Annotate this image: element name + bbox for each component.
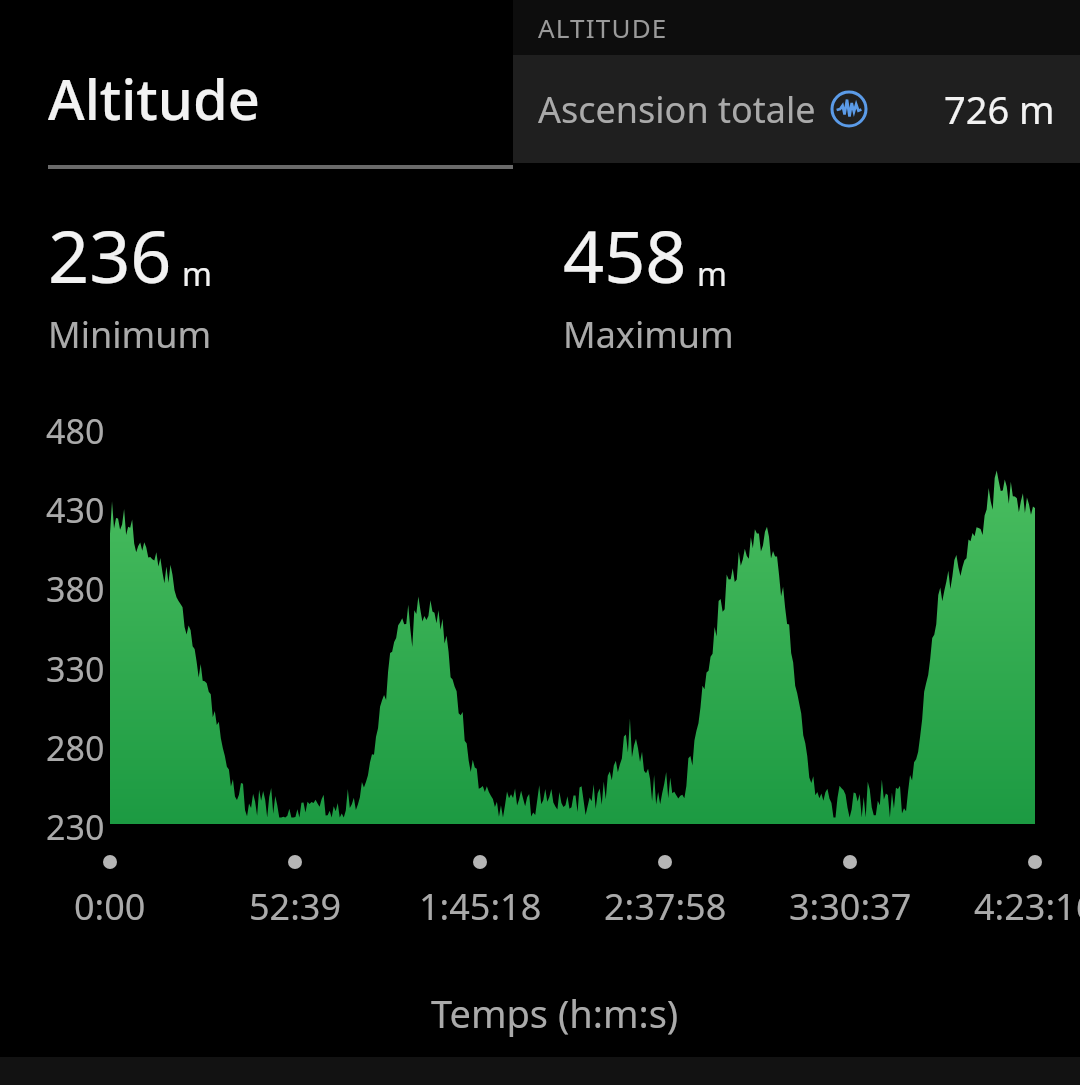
staticText: ALTITUDE bbox=[538, 10, 668, 45]
staticText: Ascension totale bbox=[538, 85, 816, 134]
staticText: 52:39 bbox=[249, 882, 342, 931]
staticText: Temps (h:m:s) bbox=[431, 987, 679, 1039]
staticText: 1:45:18 bbox=[419, 882, 542, 931]
staticText: 236 bbox=[48, 206, 172, 304]
staticText: 330 bbox=[46, 646, 105, 692]
staticText: Altitude bbox=[48, 60, 260, 136]
staticText: Maximum bbox=[563, 310, 734, 359]
staticText: 4:23:16 bbox=[974, 882, 1080, 931]
staticText: m bbox=[182, 252, 212, 296]
staticText: 2:37:58 bbox=[604, 882, 727, 931]
staticText: 0:00 bbox=[74, 882, 146, 931]
staticText: 280 bbox=[46, 725, 105, 771]
staticText: Minimum bbox=[48, 310, 212, 359]
staticText: 430 bbox=[46, 487, 105, 533]
staticText: 3:30:37 bbox=[789, 882, 912, 931]
staticText: 726 m bbox=[944, 83, 1055, 135]
staticText: 380 bbox=[46, 566, 105, 612]
button[interactable]: Ascension totale bbox=[513, 55, 1080, 163]
staticText: 458 bbox=[563, 206, 687, 304]
other: Ascension totale bbox=[830, 90, 868, 128]
staticText: m bbox=[697, 252, 727, 296]
staticText: 480 bbox=[46, 408, 105, 454]
staticText: 230 bbox=[46, 804, 105, 850]
